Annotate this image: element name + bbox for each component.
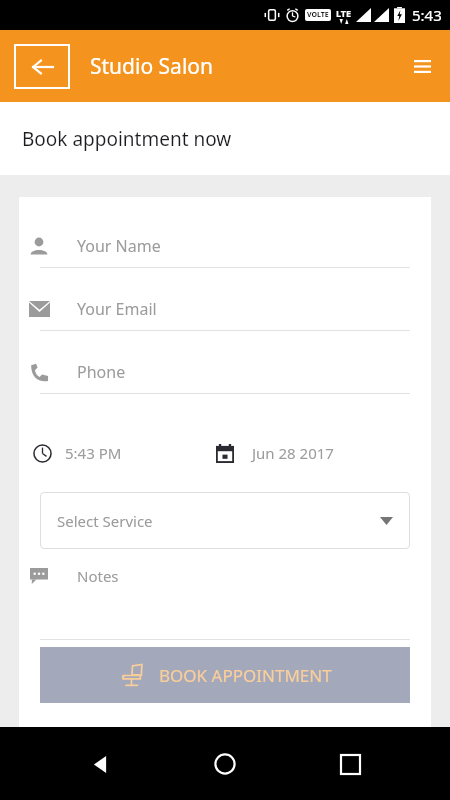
button[interactable]: Your Name — [19, 225, 431, 288]
staticText: 5:43 — [412, 5, 442, 25]
staticText: Your Email — [77, 298, 157, 320]
staticText: LTE — [336, 7, 352, 19]
staticText: Your Name — [77, 235, 161, 257]
staticText: Book appointment now — [22, 126, 232, 152]
staticText: Select Service — [57, 511, 153, 531]
button[interactable]: Home — [201, 740, 249, 788]
staticText: VOLTE — [307, 10, 329, 20]
button[interactable]: Phone — [19, 351, 431, 414]
button[interactable]: Recent apps — [326, 740, 374, 788]
button[interactable]: Your Email — [19, 288, 431, 351]
staticText: Phone — [77, 361, 126, 383]
button[interactable]: Menu — [402, 46, 442, 86]
staticText: Jun 28 2017 — [252, 443, 334, 463]
button[interactable]: Back — [14, 44, 70, 89]
staticText: BOOK APPOINTMENT — [159, 664, 332, 687]
staticText: Studio Salon — [90, 52, 213, 81]
staticText: Notes — [77, 566, 119, 586]
button[interactable]: Back — [77, 740, 125, 788]
staticText: 5:43 PM — [65, 443, 122, 463]
button[interactable]: BOOK APPOINTMENT — [40, 647, 410, 703]
button[interactable]: Notes — [19, 557, 431, 595]
button[interactable]: Select Service — [40, 492, 410, 549]
